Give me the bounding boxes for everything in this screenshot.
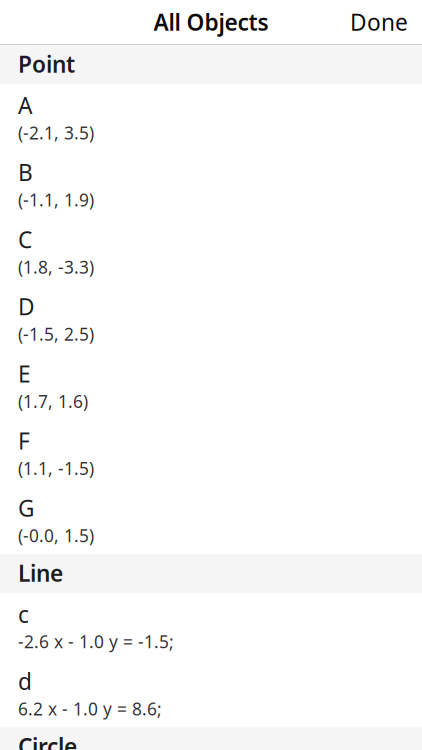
staticText: F xyxy=(18,426,30,456)
button[interactable]: F xyxy=(0,420,422,487)
staticText: E xyxy=(18,359,31,389)
staticText: -2.6 x - 1.0 y = -1.5; xyxy=(18,630,174,653)
staticText: (-0.0, 1.5) xyxy=(18,524,94,547)
staticText: Point xyxy=(18,49,75,79)
staticText: (1.7, 1.6) xyxy=(18,390,88,413)
staticText: Done xyxy=(350,7,408,37)
button[interactable]: E xyxy=(0,353,422,420)
staticText: d xyxy=(18,666,32,696)
staticText: 6.2 x - 1.0 y = 8.6; xyxy=(18,697,162,720)
staticText: D xyxy=(18,291,35,322)
staticText: G xyxy=(18,493,35,523)
button[interactable]: d xyxy=(0,660,422,727)
button[interactable]: C xyxy=(0,218,422,285)
staticText: C xyxy=(18,224,32,254)
button[interactable]: D xyxy=(0,285,422,353)
button[interactable]: A xyxy=(0,84,422,151)
staticText: A xyxy=(18,90,32,120)
staticText: (-2.1, 3.5) xyxy=(18,121,94,144)
staticText: (-1.5, 2.5) xyxy=(18,323,94,346)
staticText: (1.8, -3.3) xyxy=(18,255,94,278)
button[interactable]: B xyxy=(0,151,422,218)
button[interactable]: c xyxy=(0,593,422,660)
staticText: (1.1, -1.5) xyxy=(18,457,94,480)
staticText: (-1.1, 1.9) xyxy=(18,188,94,211)
staticText: All Objects xyxy=(153,7,268,37)
staticText: c xyxy=(18,599,29,629)
staticText: B xyxy=(18,157,33,187)
staticText: Line xyxy=(18,558,63,588)
button[interactable]: G xyxy=(0,487,422,554)
button[interactable]: Done xyxy=(336,0,422,47)
staticText: Circle xyxy=(18,731,77,750)
